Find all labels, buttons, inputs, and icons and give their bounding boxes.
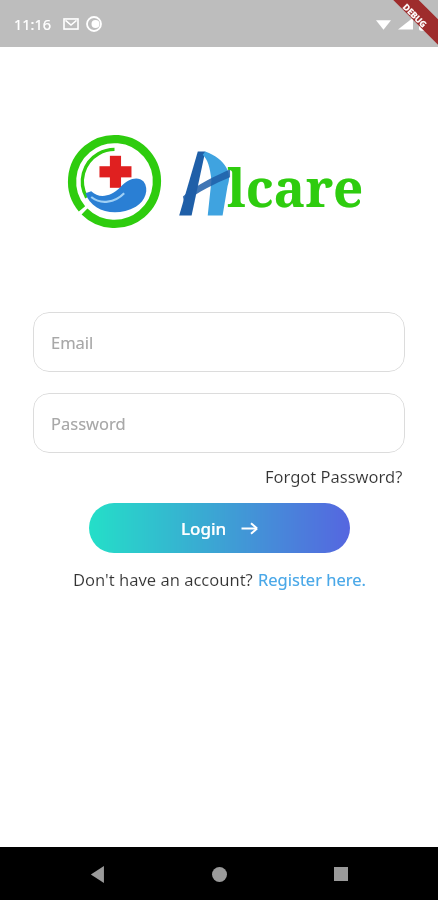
button[interactable]: Forgot Password?: [263, 463, 405, 489]
button[interactable]: Home: [195, 850, 243, 898]
staticText: Forgot Password?: [265, 465, 403, 487]
button[interactable]: Email: [33, 312, 405, 372]
staticText: Login: [181, 517, 227, 540]
button[interactable]: Back: [74, 850, 122, 898]
button[interactable]: Login: [89, 503, 350, 553]
button[interactable]: Recent apps: [317, 850, 365, 898]
staticText: Register here.: [258, 568, 366, 590]
staticText: Password: [51, 412, 126, 434]
staticText: DEBUG: [400, 1, 430, 31]
staticText: lcare: [227, 150, 364, 222]
staticText: Email: [51, 331, 94, 353]
button[interactable]: Password: [33, 393, 405, 453]
staticText: 11:16: [14, 14, 52, 34]
button[interactable]: Register here.: [258, 568, 366, 590]
staticText: Don't have an account?: [73, 568, 258, 590]
